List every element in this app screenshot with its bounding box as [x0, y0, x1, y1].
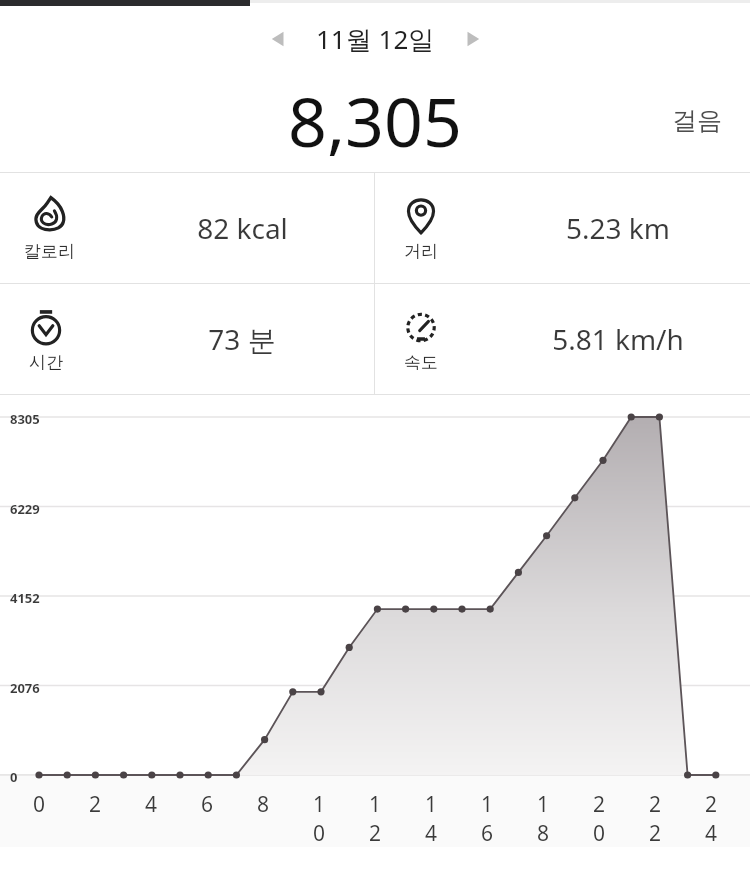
button[interactable]: 속도	[375, 284, 750, 394]
staticText: 시간	[29, 352, 63, 373]
staticText: 걸음	[672, 105, 722, 136]
staticText: 8	[251, 790, 275, 819]
button[interactable]: 칼로리	[0, 173, 374, 283]
button[interactable]: 8305	[0, 395, 750, 847]
staticText: 14	[419, 790, 443, 847]
staticText: 8,305	[288, 74, 462, 167]
button[interactable]: 거리	[375, 173, 750, 283]
staticText: 73 분	[208, 320, 276, 358]
staticText: 10	[307, 790, 331, 847]
staticText: 11월 12일	[316, 21, 435, 57]
staticText: 6	[195, 790, 219, 819]
staticText: 0	[10, 768, 18, 786]
staticText: 24	[699, 790, 723, 847]
button[interactable]: 시간	[0, 284, 374, 394]
staticText: 5.81 km/h	[552, 320, 684, 358]
staticText: 5.23 km	[566, 209, 670, 247]
button[interactable]: Previous day	[262, 22, 296, 56]
staticText: 2076	[10, 679, 40, 697]
staticText: 18	[531, 790, 555, 847]
staticText: 2	[83, 790, 107, 819]
staticText: 4	[139, 790, 163, 819]
staticText: 22	[643, 790, 667, 847]
staticText: 칼로리	[24, 241, 75, 262]
staticText: 20	[587, 790, 611, 847]
staticText: 8305	[10, 410, 40, 428]
staticText: 거리	[404, 241, 438, 262]
staticText: 속도	[404, 352, 438, 373]
staticText: 0	[27, 790, 51, 819]
staticText: 16	[475, 790, 499, 847]
staticText: 12	[363, 790, 387, 847]
staticText: 82 kcal	[197, 209, 288, 247]
staticText: 4152	[10, 589, 40, 607]
button[interactable]: Next day	[455, 22, 489, 56]
button[interactable]: 8,305	[0, 68, 750, 172]
staticText: 6229	[10, 500, 40, 518]
